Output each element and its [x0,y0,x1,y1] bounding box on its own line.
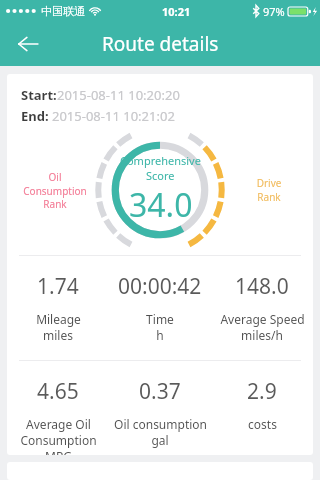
button[interactable]: 00:00:42 [109,256,211,360]
staticText: 0.37 [139,377,181,406]
staticText: 2015-08-11 10:21:02 [52,107,175,125]
button[interactable]: 0.37 [109,361,211,455]
staticText: Oil consumption [114,416,207,432]
staticText: Score [146,168,175,183]
button[interactable]: Back [6,22,50,66]
button[interactable]: 2.9 [211,361,313,455]
staticText: 2.9 [247,377,277,406]
staticText: Average Oil Consumption [20,416,97,448]
staticText: Mileage [36,311,81,327]
staticText: costs [248,416,277,432]
staticText: Start: [21,86,57,104]
staticText: 中国联通 [41,4,85,18]
staticText: Time [146,311,174,327]
staticText: MPG [45,448,72,455]
staticText: gal [151,432,169,448]
staticText: 34.0 [129,183,193,227]
staticText: 148.0 [235,272,289,301]
staticText: miles/h [241,327,283,343]
staticText: Comprehensive [120,153,201,168]
staticText: 10:21 [162,4,191,19]
staticText: Route details [102,31,219,57]
staticText: h [156,327,164,343]
staticText: 2015-08-11 10:20:20 [57,86,180,104]
button[interactable]: 4.65 [7,361,109,455]
staticText: Oil Consumption Rank [15,170,95,211]
staticText: 00:00:42 [118,272,202,301]
staticText: 4.65 [37,377,79,406]
staticText: Drive Rank [239,176,299,204]
button[interactable]: 148.0 [211,256,313,360]
staticText: 97% [263,4,285,19]
staticText: End: [21,107,52,125]
staticText: miles [43,327,73,343]
staticText: 1.74 [37,272,79,301]
staticText: Average Speed [220,311,305,327]
button[interactable]: 1.74 [7,256,109,360]
